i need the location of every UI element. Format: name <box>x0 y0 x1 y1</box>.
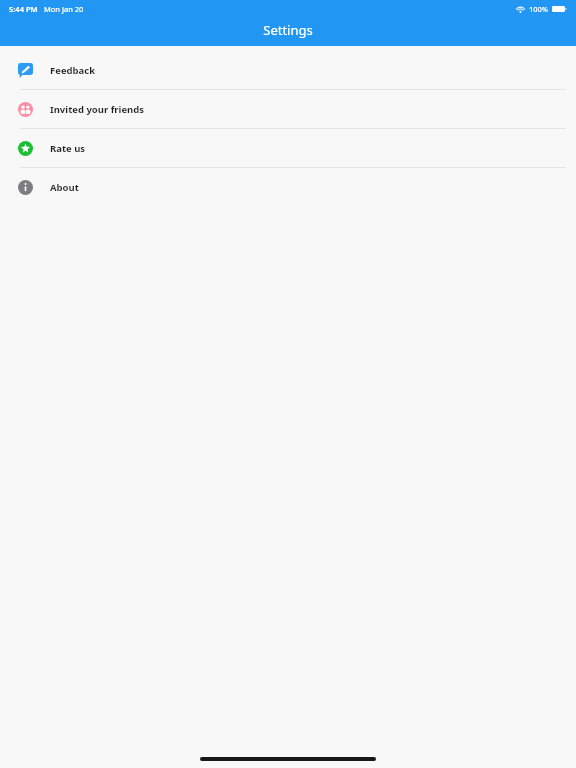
button[interactable]: Feedback <box>0 51 576 89</box>
other: About <box>18 180 33 195</box>
staticText: About <box>50 181 79 194</box>
button[interactable]: Invited your friends <box>0 90 576 128</box>
other: Feedback <box>18 63 33 78</box>
staticText: Mon Jan 20 <box>44 4 84 14</box>
staticText: 100% <box>529 4 549 14</box>
staticText: Settings <box>0 21 576 39</box>
button[interactable]: Rate us <box>0 129 576 167</box>
staticText: 5:44 PM <box>9 4 38 14</box>
button[interactable]: About <box>0 168 576 206</box>
other: Rate us <box>18 141 33 156</box>
other: Invited your friends <box>18 102 33 117</box>
staticText: Invited your friends <box>50 103 145 116</box>
staticText: Feedback <box>50 64 96 77</box>
staticText: Rate us <box>50 142 86 155</box>
